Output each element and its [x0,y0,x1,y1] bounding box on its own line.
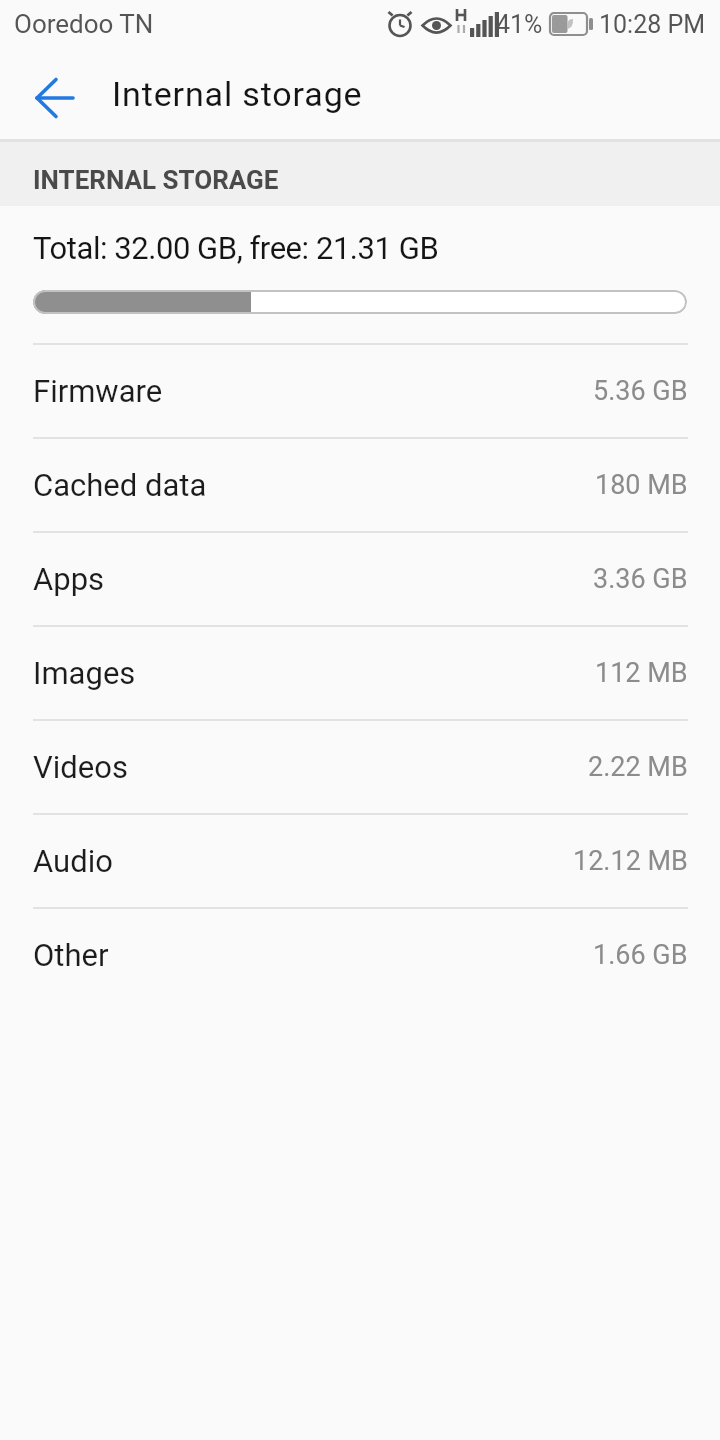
staticText: Videos [33,749,128,785]
staticText: Cached data [33,467,207,503]
staticText: 180 MB [595,469,688,501]
staticText: Internal storage [112,74,363,114]
staticText: 5.36 GB [593,375,688,407]
staticText: Total: 32.00 GB, free: 21.31 GB [33,230,439,266]
staticText: Firmware [33,373,163,409]
staticText: Images [33,655,136,691]
staticText: Apps [33,561,105,597]
button[interactable]: Other [0,909,720,1001]
staticText: 1.66 GB [593,939,688,971]
staticText: 41% [496,10,543,39]
staticText: INTERNAL STORAGE [33,165,279,195]
staticText: 112 MB [595,657,688,689]
staticText: 10:28 PM [599,10,706,39]
button[interactable]: Videos [0,721,720,813]
staticText: 3.36 GB [593,563,688,595]
staticText: 2.22 MB [588,751,688,783]
button[interactable]: Cached data [0,439,720,531]
staticText: 12.12 MB [573,845,688,877]
button[interactable]: Firmware [0,345,720,437]
button[interactable] [0,54,80,134]
staticText: Ooredoo TN [14,9,154,39]
staticText: Audio [33,843,113,879]
staticText: Other [33,937,109,973]
button[interactable]: Apps [0,533,720,625]
button[interactable]: Images [0,627,720,719]
button[interactable]: Audio [0,815,720,907]
